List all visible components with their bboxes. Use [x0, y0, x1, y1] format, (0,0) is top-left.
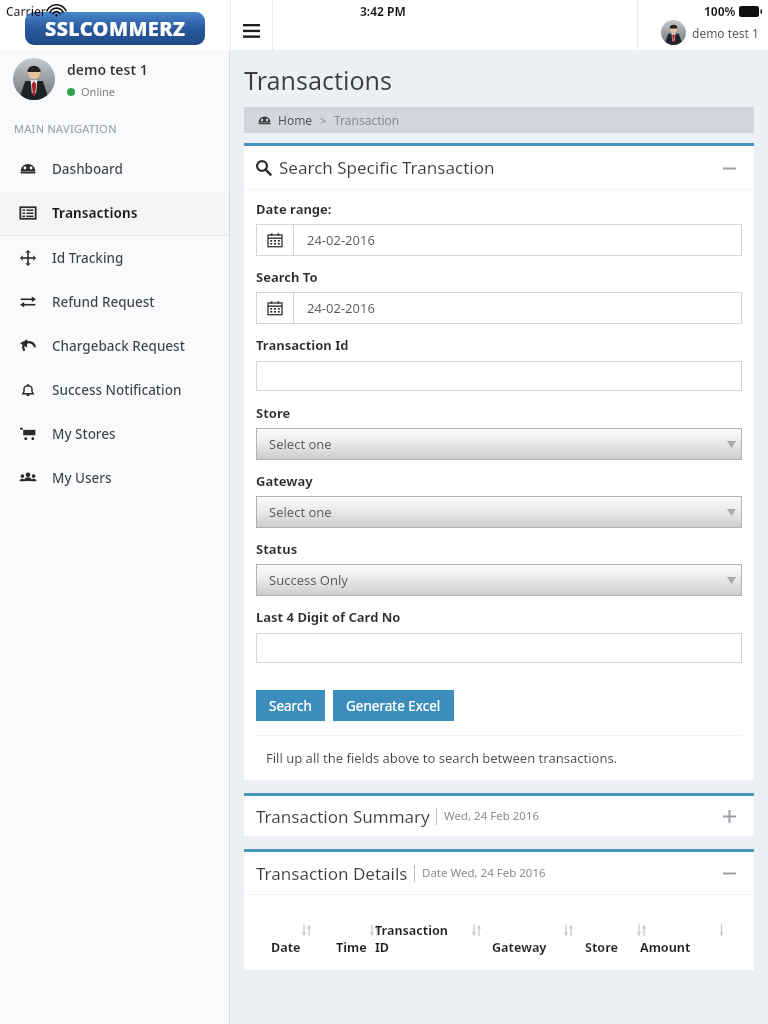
button[interactable]: demo test 1 — [13, 50, 230, 108]
staticText: Time — [336, 939, 367, 956]
staticText: ID — [375, 939, 390, 956]
button[interactable]: demo test 1 — [661, 20, 759, 45]
staticText: Home — [278, 112, 313, 128]
button[interactable]: Collapse section — [716, 155, 742, 181]
staticText: Transaction Details — [256, 862, 408, 885]
staticText: Id Tracking — [52, 249, 124, 267]
staticText: Online — [81, 84, 116, 99]
staticText: Fill up all the fields above to search b… — [266, 749, 618, 767]
button[interactable]: SSLCommerz home — [25, 12, 205, 45]
staticText: Last 4 Digit of Card No — [256, 608, 401, 626]
staticText: > — [320, 113, 327, 128]
staticText: Wed, 24 Feb 2016 — [444, 808, 540, 824]
button[interactable]: Expand section — [716, 803, 742, 829]
button[interactable]: My Users — [0, 456, 230, 500]
staticText: Date range: — [256, 200, 332, 218]
staticText: 3:42 PM — [360, 3, 406, 19]
button[interactable]: 24-02-2016 — [256, 292, 742, 324]
staticText: 24-02-2016 — [307, 231, 375, 249]
staticText: 100% — [704, 3, 736, 19]
button[interactable]: My Stores — [0, 412, 230, 456]
button[interactable]: Generate Excel — [333, 690, 454, 721]
staticText: Search Specific Transaction — [279, 156, 495, 179]
button[interactable]: Refund Request — [0, 280, 230, 324]
staticText: Gateway — [256, 472, 313, 490]
staticText: Transaction Id — [256, 336, 349, 354]
staticText: Transaction — [334, 112, 400, 128]
staticText: Success Notification — [52, 381, 182, 399]
button[interactable]: Success Notification — [0, 368, 230, 412]
staticText: My Stores — [52, 425, 116, 443]
staticText: Status — [256, 540, 298, 558]
button[interactable]: Success Only — [256, 564, 742, 596]
staticText: Generate Excel — [346, 697, 441, 715]
staticText: Date — [271, 939, 301, 956]
staticText: Select one — [269, 503, 332, 521]
staticText: demo test 1 — [67, 60, 148, 79]
staticText: Select one — [269, 435, 332, 453]
staticText: Store — [256, 404, 291, 422]
button[interactable] — [256, 361, 742, 391]
button[interactable]: Collapse section — [716, 860, 742, 886]
button[interactable]: Select one — [256, 496, 742, 528]
staticText: SSLCOMMERZ — [45, 15, 186, 42]
staticText: Search — [269, 697, 312, 715]
button[interactable]: Chargeback Request — [0, 324, 230, 368]
staticText: 24-02-2016 — [307, 299, 375, 317]
staticText: MAIN NAVIGATION — [14, 121, 117, 136]
button[interactable] — [256, 633, 742, 663]
button[interactable]: Id Tracking — [0, 236, 230, 280]
staticText: Transaction — [375, 922, 448, 939]
staticText: Store — [585, 939, 618, 956]
button[interactable]: 24-02-2016 — [256, 224, 742, 256]
staticText: Transactions — [244, 63, 392, 97]
staticText: Search To — [256, 268, 318, 286]
staticText: Transaction Summary — [256, 805, 430, 828]
button[interactable]: Toggle navigation — [231, 0, 272, 50]
staticText: Refund Request — [52, 293, 155, 311]
staticText: Date Wed, 24 Feb 2016 — [422, 865, 546, 881]
button[interactable]: Transactions — [0, 191, 230, 235]
staticText: My Users — [52, 469, 112, 487]
button[interactable]: Search — [256, 690, 325, 721]
staticText: Success Only — [269, 571, 348, 589]
staticText: Dashboard — [52, 160, 123, 178]
staticText: Amount — [640, 939, 691, 956]
staticText: Carrier — [6, 3, 46, 19]
staticText: Chargeback Request — [52, 337, 185, 355]
staticText: Gateway — [492, 939, 547, 956]
staticText: demo test 1 — [692, 25, 759, 41]
button[interactable]: Dashboard — [0, 147, 230, 191]
button[interactable]: Home — [278, 112, 313, 128]
button[interactable]: Select one — [256, 428, 742, 460]
staticText: Transactions — [52, 204, 138, 222]
